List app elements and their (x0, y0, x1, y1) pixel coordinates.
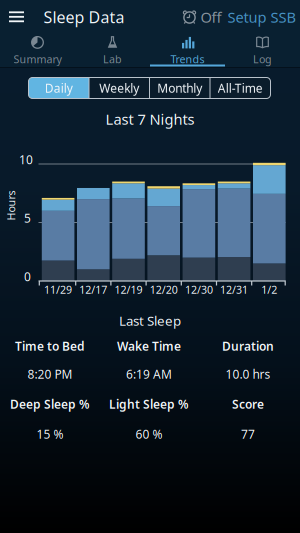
button[interactable]: Summary (0, 35, 75, 66)
staticText: Off (200, 7, 221, 27)
staticText: 77 (241, 426, 255, 442)
staticText: Score (232, 396, 264, 412)
staticText: 12/17 (79, 282, 107, 297)
button[interactable]: Log (225, 35, 300, 66)
staticText: Setup SSB (227, 7, 296, 27)
button[interactable]: Off (182, 7, 221, 27)
staticText: 12/19 (114, 282, 142, 297)
staticText: Duration (222, 338, 274, 354)
staticText: 12/20 (150, 282, 178, 297)
button[interactable]: Lab (75, 35, 150, 66)
staticText: Deep Sleep % (10, 396, 90, 412)
staticText: 12/30 (185, 282, 213, 297)
staticText: 5 (24, 210, 31, 226)
staticText: Last Sleep (119, 312, 181, 329)
staticText: 1/2 (261, 282, 277, 297)
staticText: 60 % (135, 426, 162, 442)
button[interactable]: Weekly (89, 77, 149, 98)
staticText: All-Time (218, 80, 263, 96)
staticText: Hours (0, 198, 26, 213)
staticText: Light Sleep % (109, 396, 189, 412)
staticText: 10.0 hrs (225, 366, 270, 382)
button[interactable] (0, 0, 300, 533)
staticText: Last 7 Nights (105, 109, 194, 129)
button[interactable]: Monthly (149, 77, 210, 98)
staticText: 10 (19, 151, 33, 167)
staticText: Trends (170, 52, 204, 66)
staticText: 12/31 (220, 282, 248, 297)
button[interactable]: Daily (28, 77, 89, 98)
staticText: Time to Bed (15, 338, 85, 354)
staticText: Daily (45, 80, 73, 96)
staticText: 8:20 PM (27, 366, 72, 382)
staticText: Wake Time (117, 338, 181, 354)
staticText: 15 % (36, 426, 63, 442)
staticText: 0 (24, 268, 31, 284)
staticText: Sleep Data (43, 6, 124, 28)
staticText: 11/29 (44, 282, 72, 297)
button[interactable]: All-Time (210, 77, 270, 98)
staticText: 6:19 AM (126, 366, 172, 382)
staticText: Monthly (157, 80, 202, 96)
staticText: Summary (13, 52, 61, 66)
staticText: Lab (103, 52, 122, 66)
staticText: Weekly (99, 80, 139, 96)
button[interactable]: Trends (150, 35, 225, 66)
staticText: Log (253, 52, 272, 66)
button[interactable]: Setup SSB (227, 7, 296, 27)
